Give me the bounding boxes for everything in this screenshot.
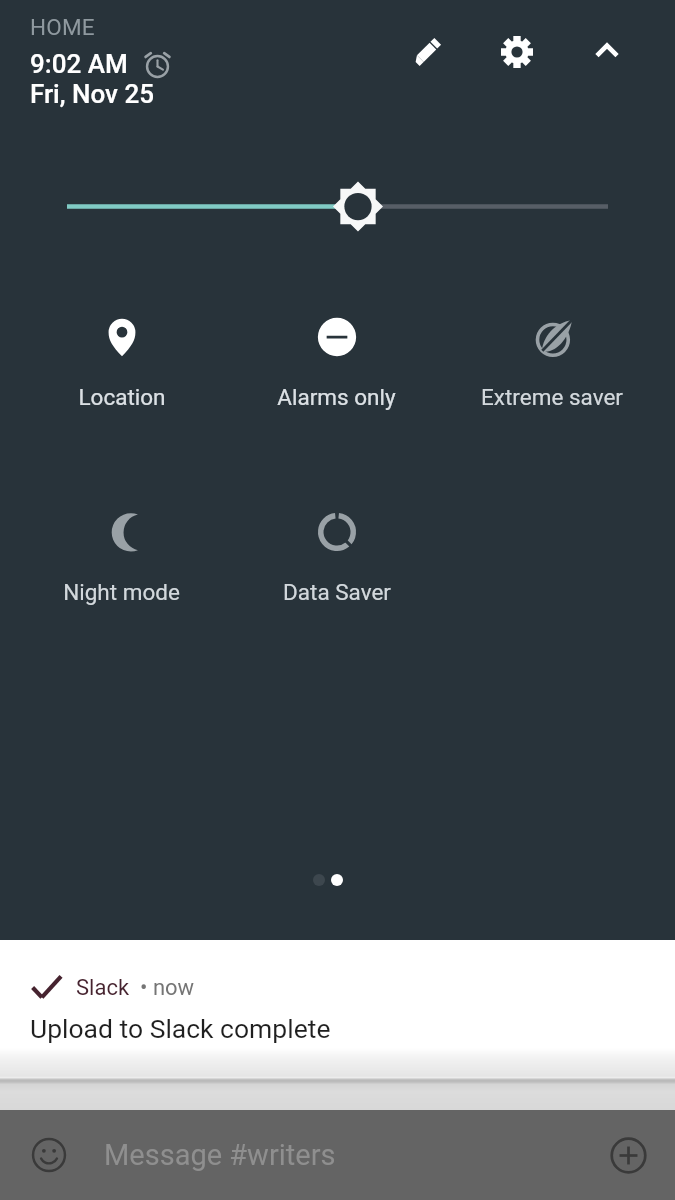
staticText: HOME <box>30 14 95 40</box>
staticText: Upload to Slack complete <box>30 1013 331 1044</box>
button[interactable]: Extreme saver <box>444 306 659 410</box>
button[interactable]: Alarms only <box>229 306 444 410</box>
staticText: Location <box>78 384 166 410</box>
button[interactable]: Edit <box>399 24 455 80</box>
button[interactable]: Brightness <box>0 180 675 238</box>
staticText: Fri, Nov 25 <box>30 79 154 109</box>
button[interactable]: Night mode <box>14 501 229 605</box>
staticText: Night mode <box>63 579 180 605</box>
staticText: Extreme saver <box>481 384 623 410</box>
staticText: Message #writers <box>104 1138 336 1172</box>
staticText: • now <box>140 975 195 1001</box>
button[interactable]: Add attachment <box>598 1125 658 1185</box>
button[interactable]: Data Saver <box>229 501 444 605</box>
staticText: Slack <box>76 975 130 1001</box>
button[interactable]: Emoji <box>19 1125 79 1185</box>
button[interactable]: Collapse <box>579 24 635 80</box>
button[interactable]: Settings <box>489 24 545 80</box>
button[interactable]: Location <box>14 306 229 410</box>
staticText: Alarms only <box>277 384 396 410</box>
staticText: 9:02 AM <box>30 49 128 79</box>
staticText: Data Saver <box>283 579 391 605</box>
